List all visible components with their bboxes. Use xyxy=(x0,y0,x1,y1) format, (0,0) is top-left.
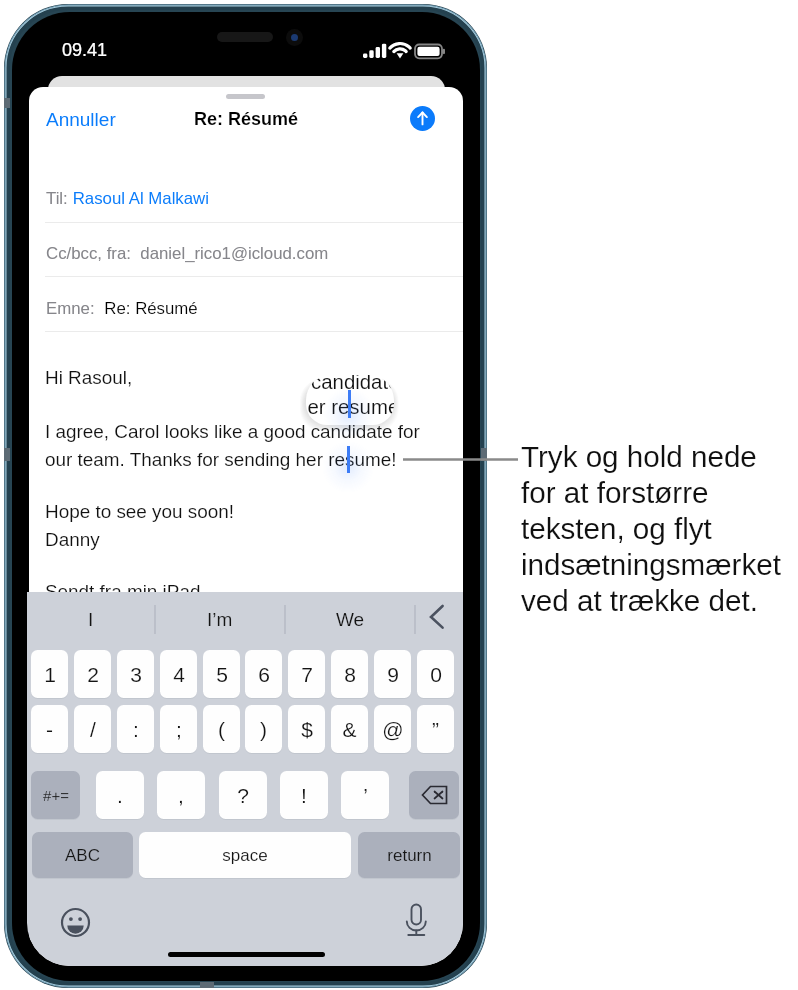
staticText: 8 xyxy=(344,663,356,686)
button[interactable]: Til: xyxy=(40,175,463,222)
staticText: 0 xyxy=(430,663,442,686)
staticText: @ xyxy=(382,718,404,741)
staticText: 7 xyxy=(301,663,313,686)
staticText: Tryk og hold nede for at forstørre tekst… xyxy=(521,440,789,617)
button[interactable]: ! xyxy=(280,771,328,819)
button[interactable]: We xyxy=(305,592,395,646)
staticText: : xyxy=(133,718,139,741)
staticText: - xyxy=(46,718,53,741)
staticText: I agree, Carol looks like a good candida… xyxy=(45,421,420,470)
staticText: $ xyxy=(301,718,313,741)
button[interactable]: , xyxy=(157,771,205,819)
button[interactable]: 8 xyxy=(331,650,368,698)
button[interactable]: space xyxy=(139,832,351,878)
button[interactable]: 6 xyxy=(245,650,282,698)
staticText: 3 xyxy=(130,663,142,686)
staticText: Rasoul Al Malkawi xyxy=(68,189,209,208)
button[interactable]: 9 xyxy=(374,650,411,698)
button[interactable]: 1 xyxy=(31,650,68,698)
button[interactable]: Cc/bcc, fra: xyxy=(40,230,463,276)
button[interactable]: 3 xyxy=(117,650,154,698)
staticText: #+= xyxy=(43,787,69,804)
staticText: Til: xyxy=(46,189,68,208)
staticText: Hi Rasoul, xyxy=(45,367,133,388)
staticText: 9 xyxy=(387,663,399,686)
button[interactable]: : xyxy=(117,705,154,753)
button[interactable]: ? xyxy=(219,771,267,819)
staticText: Emne: xyxy=(46,299,95,318)
staticText: Sendt fra min iPad xyxy=(45,581,201,602)
staticText: ( xyxy=(218,718,225,741)
staticText: ! xyxy=(301,784,307,807)
staticText: 6 xyxy=(258,663,270,686)
button[interactable]: 0 xyxy=(417,650,454,698)
button[interactable]: Previous suggestion xyxy=(415,592,461,646)
staticText: I xyxy=(88,609,94,630)
button[interactable]: Emne: xyxy=(40,285,463,331)
staticText: good candidate for xyxy=(306,375,394,394)
staticText: Cc/bcc, fra: xyxy=(46,244,131,263)
button[interactable]: ) xyxy=(245,705,282,753)
staticText: 2 xyxy=(87,663,99,686)
staticText: 1 xyxy=(44,663,56,686)
staticText: Annuller xyxy=(46,109,116,130)
staticText: I’m xyxy=(207,609,233,630)
button[interactable]: 4 xyxy=(160,650,197,698)
staticText: ’ xyxy=(363,784,368,807)
button[interactable]: / xyxy=(74,705,111,753)
button[interactable]: Dictation xyxy=(399,903,433,937)
button[interactable]: - xyxy=(31,705,68,753)
staticText: ? xyxy=(237,784,249,807)
staticText: ” xyxy=(432,718,439,741)
button[interactable]: ( xyxy=(203,705,240,753)
staticText: daniel_rico1@icloud.com xyxy=(131,244,329,263)
button[interactable]: #+= xyxy=(31,771,80,819)
button[interactable]: Send xyxy=(410,106,435,131)
button[interactable]: return xyxy=(358,832,460,878)
button[interactable]: 2 xyxy=(74,650,111,698)
staticText: Re: Résumé xyxy=(95,299,198,318)
button[interactable]: & xyxy=(331,705,368,753)
button[interactable]: ” xyxy=(417,705,454,753)
button[interactable]: Backspace xyxy=(409,771,459,819)
button[interactable]: @ xyxy=(374,705,411,753)
button[interactable]: ABC xyxy=(32,832,133,878)
button[interactable]: 5 xyxy=(203,650,240,698)
button[interactable]: ’ xyxy=(341,771,389,819)
staticText: Hope to see you soon! Danny xyxy=(45,501,235,550)
staticText: , xyxy=(178,784,184,807)
staticText: return xyxy=(387,846,432,865)
button[interactable]: I xyxy=(46,592,136,646)
staticText: space xyxy=(222,846,268,865)
button[interactable]: Annuller xyxy=(40,104,122,134)
staticText: ; xyxy=(176,718,182,741)
staticText: Re: Résumé xyxy=(194,109,299,129)
button[interactable]: 7 xyxy=(288,650,325,698)
staticText: 4 xyxy=(173,663,185,686)
staticText: We xyxy=(336,609,365,630)
button[interactable]: Emoji keyboard xyxy=(58,905,93,940)
button[interactable]: . xyxy=(96,771,144,819)
button[interactable]: I’m xyxy=(175,592,265,646)
staticText: / xyxy=(90,718,96,741)
staticText: 5 xyxy=(216,663,228,686)
button[interactable]: $ xyxy=(288,705,325,753)
button[interactable]: ; xyxy=(160,705,197,753)
staticText: sending her resume! xyxy=(306,396,394,419)
staticText: . xyxy=(117,784,123,807)
staticText: ABC xyxy=(65,846,100,865)
staticText: ) xyxy=(260,718,267,741)
staticText: 09.41 xyxy=(62,40,108,60)
staticText: & xyxy=(342,718,357,741)
